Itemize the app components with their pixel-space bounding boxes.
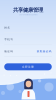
staticText: 共享健康管理 [13,7,43,13]
button[interactable]: 姓名 [4,21,52,32]
staticText: Share Health Management [19,14,37,16]
staticText: 手机号 [4,38,13,41]
staticText: 验证码 [4,50,13,53]
button[interactable]: 验证码 [4,45,52,56]
button[interactable]: 立即注册 [4,63,52,70]
staticText: 获取验证码 [37,50,52,53]
staticText: 姓名 [4,26,10,29]
staticText: 立即注册 [22,65,34,68]
button[interactable]: 手机号 [4,33,52,44]
